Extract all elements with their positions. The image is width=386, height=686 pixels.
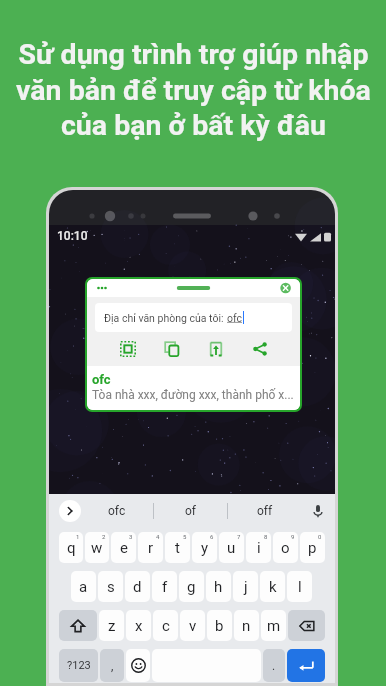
staticText: b [215,617,224,635]
button[interactable]: Select all [115,336,141,362]
button[interactable]: c [153,610,178,641]
button[interactable]: h [206,571,231,602]
button[interactable]: off [228,504,301,518]
button[interactable]: z [99,610,124,641]
staticText: ofc [108,504,126,518]
staticText: f [162,578,168,596]
staticText: z [108,617,116,635]
button[interactable]: Địa chỉ văn phòng của tôi: [104,303,283,332]
button[interactable]: of [154,504,227,518]
button[interactable]: x [126,610,151,641]
button[interactable]: Emoji [126,649,150,682]
staticText: m [267,617,281,635]
staticText: Địa chỉ văn phòng của tôi: [104,312,227,324]
button[interactable]: Share [247,336,273,362]
button[interactable]: Backspace [288,610,325,641]
staticText: 6 [210,533,214,540]
staticText: d [133,578,142,596]
button[interactable]: l [287,571,312,602]
button[interactable]: Enter [287,649,325,682]
button[interactable]: f [152,571,177,602]
button[interactable]: v [180,610,205,641]
staticText: l [298,578,302,596]
staticText: 10:10 [57,229,88,243]
button[interactable]: w [85,532,109,563]
staticText: Sử dụng trình trợ giúp nhập văn bản để t… [16,38,371,142]
staticText: h [214,578,223,596]
staticText: j [244,578,248,596]
staticText: w [91,539,103,557]
button[interactable]: a [71,571,96,602]
button[interactable]: k [260,571,285,602]
button[interactable]: m [261,610,286,641]
staticText: t [175,539,180,557]
staticText: 5 [183,533,187,540]
button[interactable]: Copy [159,336,185,362]
staticText: , [111,659,114,673]
staticText: 2 [102,533,106,540]
button[interactable]: Shift [59,610,97,641]
staticText: 1 [76,533,80,540]
button[interactable]: j [233,571,258,602]
staticText: n [242,617,251,635]
staticText: r [148,539,154,557]
button[interactable]: ofc [81,504,153,518]
button[interactable]: s [98,571,123,602]
button[interactable]: , [100,649,124,682]
other: Open in [208,341,224,357]
button[interactable]: t [165,532,190,563]
button[interactable]: o [273,532,298,563]
staticText: 8 [264,533,268,540]
button[interactable]: d [125,571,150,602]
staticText: ofc [92,372,111,387]
staticText: c [162,617,170,635]
button[interactable]: q [59,532,83,563]
button[interactable]: n [234,610,259,641]
staticText: s [107,578,115,596]
staticText: 4 [156,533,160,540]
staticText: of [185,504,197,518]
button[interactable]: Open in [203,336,229,362]
button[interactable]: . [263,649,285,682]
staticText: p [308,539,317,557]
staticText: 7 [237,533,241,540]
staticText: 9 [291,533,295,540]
staticText: a [79,578,88,596]
staticText: g [187,578,196,596]
other: Share [252,341,268,357]
button[interactable]: Voice input [301,504,335,518]
button[interactable]: ofc [87,366,300,410]
staticText: x [135,617,143,635]
staticText: Tòa nhà xxx, đường xxx, thành phố x... [92,388,294,402]
staticText: u [227,539,236,557]
staticText: ?123 [67,659,91,672]
staticText: o [281,539,290,557]
staticText: off [257,504,273,518]
button[interactable]: r [138,532,163,563]
button[interactable]: ?123 [59,649,98,682]
button[interactable]: More [59,500,81,522]
staticText: . [272,659,276,673]
staticText: 0 [318,533,322,540]
button[interactable]: e [111,532,136,563]
staticText: y [201,539,209,557]
staticText: q [67,539,76,557]
other: Select all [120,341,136,357]
staticText: k [269,578,277,596]
button[interactable]: b [207,610,232,641]
staticText: i [257,539,261,557]
other: Copy [164,341,180,357]
button[interactable]: p [300,532,325,563]
staticText: e [120,539,128,557]
button[interactable]: y [192,532,217,563]
button[interactable]: g [179,571,204,602]
button[interactable]: u [219,532,244,563]
button[interactable]: i [246,532,271,563]
staticText: v [189,617,197,635]
staticText: 3 [129,533,133,540]
staticText: ofc [227,312,243,324]
